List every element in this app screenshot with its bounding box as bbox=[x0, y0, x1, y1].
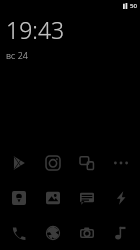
button[interactable]: Phone bbox=[4, 218, 34, 248]
button[interactable]: Gallery bbox=[38, 183, 68, 213]
button[interactable]: Multi window bbox=[72, 148, 102, 178]
button[interactable]: Play Store bbox=[4, 148, 34, 178]
staticText: 19:43 bbox=[6, 14, 65, 45]
button[interactable]: Browser bbox=[38, 218, 68, 248]
button[interactable]: Instagram bbox=[38, 148, 68, 178]
staticText: вс 24 bbox=[6, 49, 28, 61]
button[interactable]: More apps bbox=[106, 148, 136, 178]
button[interactable]: Flash bbox=[106, 183, 136, 213]
staticText: 50 bbox=[130, 2, 137, 10]
button[interactable]: Music bbox=[106, 218, 136, 248]
button[interactable]: Messages bbox=[72, 183, 102, 213]
button[interactable]: Maps bbox=[4, 183, 34, 213]
button[interactable]: Camera bbox=[72, 218, 102, 248]
